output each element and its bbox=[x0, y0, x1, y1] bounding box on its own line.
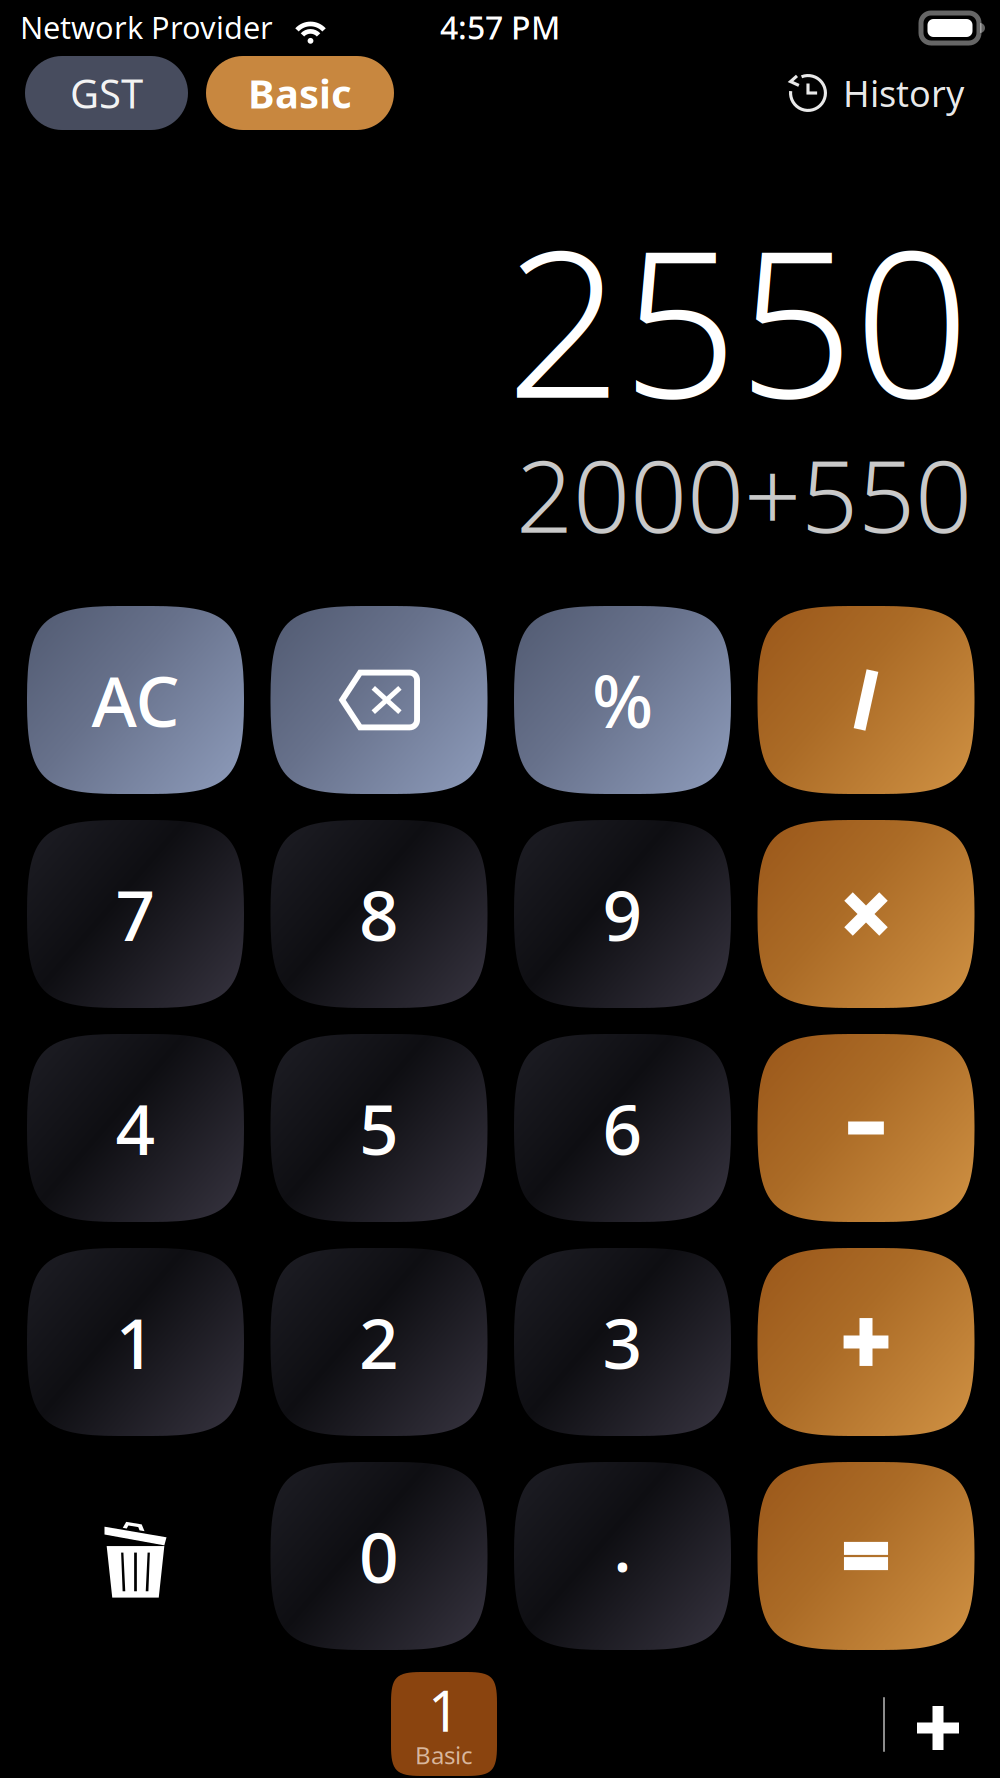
staticText: 3 bbox=[602, 1296, 642, 1388]
staticText: GST bbox=[70, 66, 143, 119]
staticText: Basic bbox=[248, 66, 352, 119]
staticText: History bbox=[843, 69, 964, 117]
button[interactable]: Divide bbox=[757, 606, 974, 794]
button[interactable]: 1 bbox=[391, 1672, 497, 1776]
button[interactable]: 7 bbox=[27, 820, 244, 1008]
button[interactable]: Clear bbox=[27, 1462, 244, 1650]
staticText: Basic bbox=[415, 1739, 473, 1771]
button[interactable]: 6 bbox=[514, 1034, 731, 1222]
staticText: . bbox=[613, 1499, 632, 1591]
button[interactable]: 8 bbox=[270, 820, 487, 1008]
button[interactable]: Add bbox=[757, 1248, 974, 1436]
button[interactable]: 9 bbox=[514, 820, 731, 1008]
staticText: 5 bbox=[359, 1082, 399, 1174]
staticText: 2000+550 bbox=[516, 428, 972, 560]
button[interactable]: Subtract bbox=[757, 1034, 974, 1222]
staticText: Network Provider bbox=[20, 7, 273, 47]
button[interactable]: % bbox=[514, 606, 731, 794]
staticText: % bbox=[592, 652, 653, 748]
staticText: 2550 bbox=[506, 184, 970, 453]
button[interactable]: Add bbox=[902, 1692, 974, 1764]
staticText: 0 bbox=[359, 1510, 399, 1602]
button[interactable]: Backspace bbox=[270, 606, 487, 794]
button[interactable]: AC bbox=[27, 606, 244, 794]
staticText: 9 bbox=[602, 868, 642, 960]
button[interactable]: 4 bbox=[27, 1034, 244, 1222]
staticText: 4:57 PM bbox=[440, 6, 560, 48]
staticText: 4 bbox=[115, 1082, 155, 1174]
button[interactable]: 0 bbox=[270, 1462, 487, 1650]
button[interactable]: 5 bbox=[270, 1034, 487, 1222]
button[interactable]: Basic bbox=[206, 56, 394, 130]
staticText: 7 bbox=[115, 868, 155, 960]
button[interactable]: GST bbox=[25, 56, 188, 130]
button[interactable]: 2 bbox=[270, 1248, 487, 1436]
staticText: 2 bbox=[359, 1296, 399, 1388]
staticText: AC bbox=[91, 654, 179, 746]
staticText: 1 bbox=[428, 1673, 460, 1747]
staticText: 1 bbox=[115, 1296, 155, 1388]
button[interactable]: Multiply bbox=[757, 820, 974, 1008]
button[interactable]: History bbox=[789, 69, 964, 117]
button[interactable]: Equals bbox=[757, 1462, 974, 1650]
staticText: 6 bbox=[602, 1082, 642, 1174]
button[interactable]: 1 bbox=[27, 1248, 244, 1436]
button[interactable]: 3 bbox=[514, 1248, 731, 1436]
staticText: 8 bbox=[359, 868, 399, 960]
button[interactable]: . bbox=[514, 1462, 731, 1650]
